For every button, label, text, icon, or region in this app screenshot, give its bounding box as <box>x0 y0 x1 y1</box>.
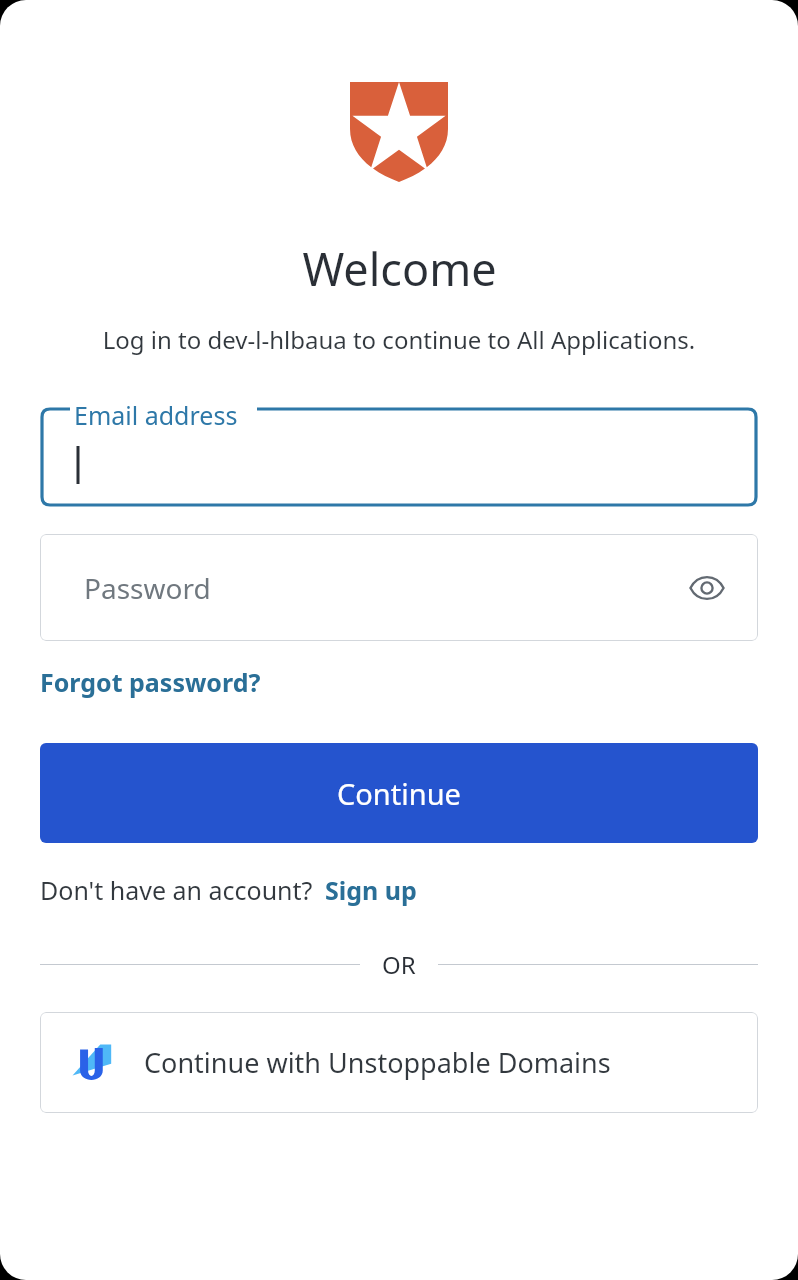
button[interactable]: Password <box>40 534 758 641</box>
button[interactable]: Email address <box>40 400 758 507</box>
button[interactable]: Sign up <box>325 869 417 911</box>
button[interactable]: Continue <box>40 743 758 843</box>
staticText: Don't have an account? <box>40 873 313 907</box>
staticText: Welcome <box>302 238 497 299</box>
staticText: Email address <box>74 398 238 432</box>
staticText: Continue with Unstoppable Domains <box>144 1044 611 1081</box>
button[interactable]: Continue with Unstoppable Domains <box>40 1012 758 1113</box>
staticText: Continue <box>337 774 461 813</box>
button[interactable]: Show password <box>684 565 730 611</box>
staticText: Forgot password? <box>40 665 261 699</box>
staticText: Sign up <box>325 873 417 907</box>
staticText: OR <box>382 948 416 981</box>
staticText: Password <box>84 569 211 607</box>
button[interactable]: Forgot password? <box>40 659 261 705</box>
staticText: Log in to dev-l-hlbaua to continue to Al… <box>72 323 726 356</box>
